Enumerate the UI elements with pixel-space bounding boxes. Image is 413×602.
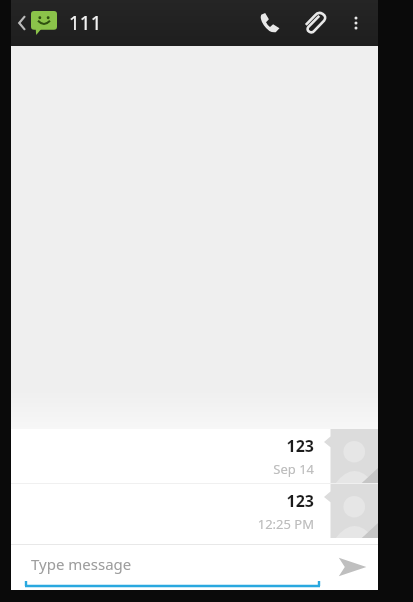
button[interactable]: 123 — [11, 484, 378, 538]
staticText: 111 — [69, 10, 102, 36]
staticText: 123 — [286, 490, 314, 512]
button[interactable]: More options — [336, 3, 376, 43]
button[interactable]: Type message — [11, 544, 326, 590]
button[interactable]: 123 — [11, 429, 378, 483]
staticText: 12:25 PM — [257, 515, 314, 533]
button[interactable]: Back to conversations — [11, 11, 61, 35]
button[interactable]: Call — [248, 1, 292, 45]
staticText: 123 — [286, 435, 314, 457]
button[interactable]: Attach — [292, 1, 336, 45]
staticText: Type message — [31, 554, 132, 574]
staticText: Sep 14 — [273, 460, 314, 478]
button[interactable]: Send — [326, 544, 378, 590]
